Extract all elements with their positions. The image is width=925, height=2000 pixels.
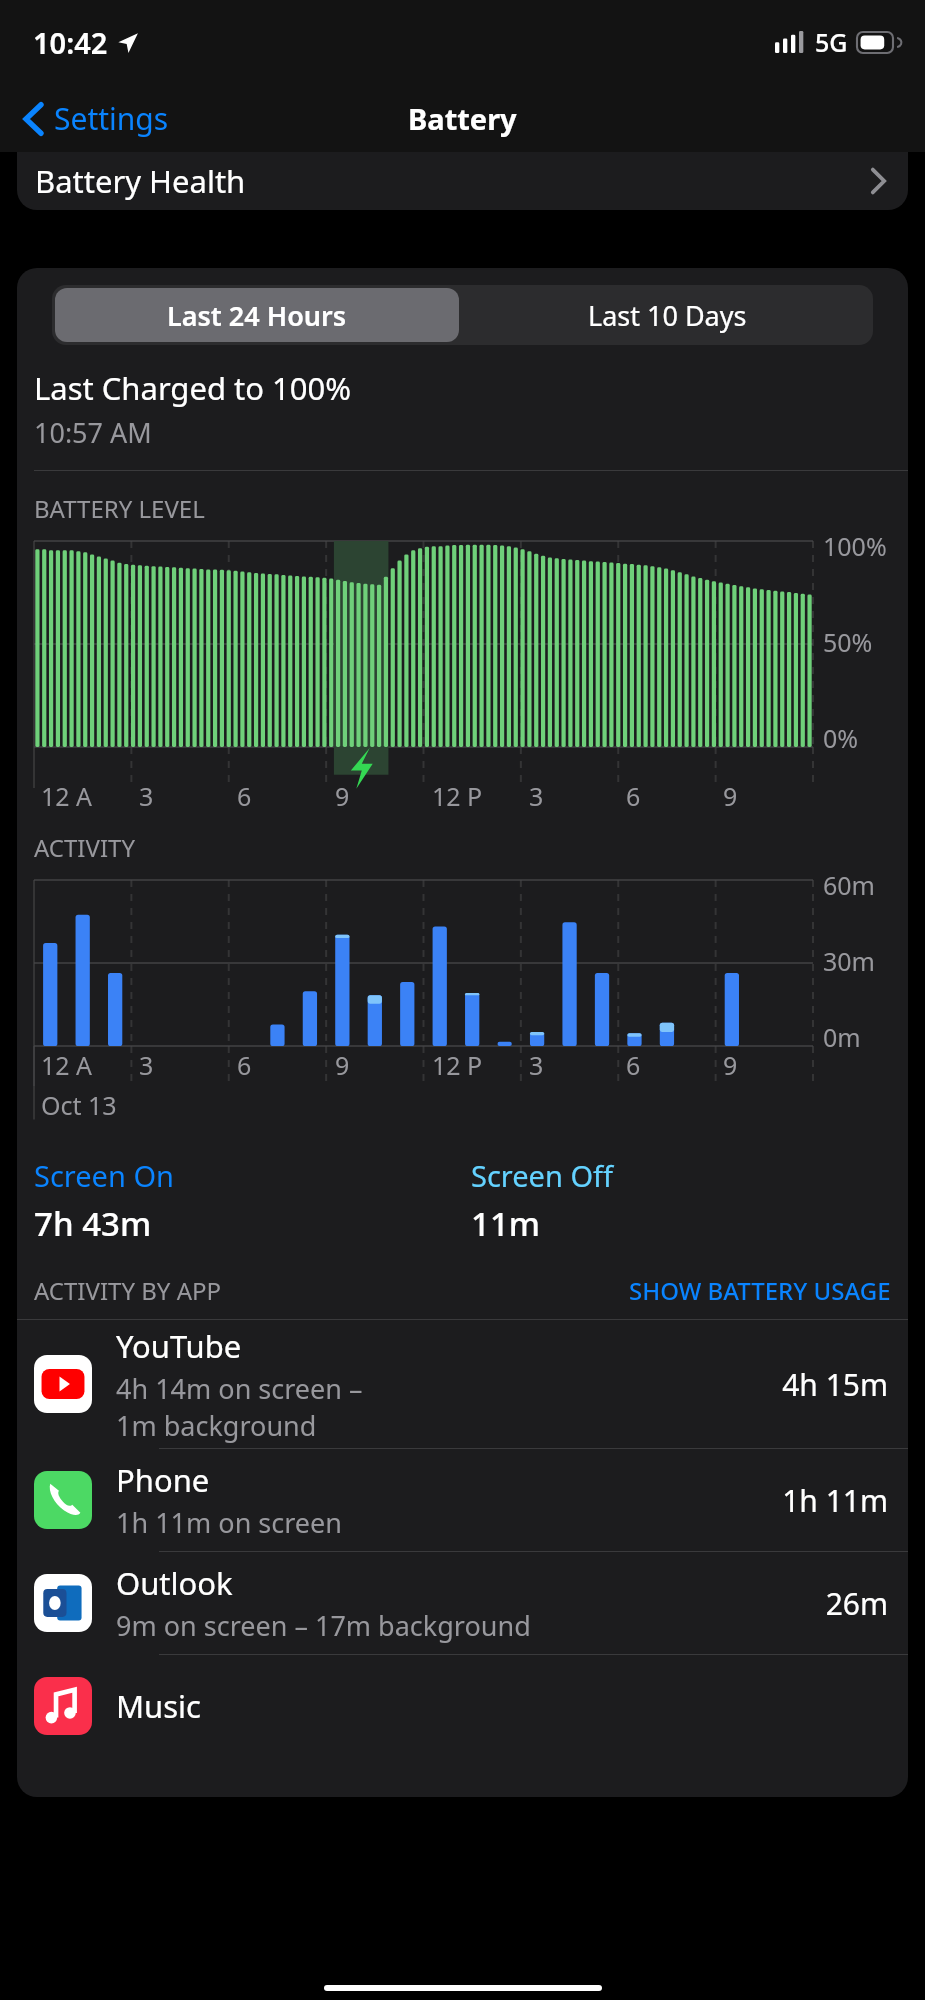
staticText: 4h 15m bbox=[782, 1364, 888, 1405]
staticText: 6 bbox=[626, 779, 641, 813]
staticText: 4h 14m on screen – bbox=[116, 1370, 363, 1407]
staticText: 0% bbox=[823, 721, 859, 755]
button[interactable]: Battery Health bbox=[17, 152, 908, 210]
staticText: 26m bbox=[825, 1583, 888, 1624]
staticText: Battery bbox=[408, 99, 517, 138]
staticText: 9 bbox=[335, 1048, 350, 1082]
staticText: 7h 43m bbox=[34, 1201, 152, 1246]
staticText: 12 A bbox=[41, 1048, 93, 1082]
staticText: 10:57 AM bbox=[34, 414, 152, 451]
staticText: 6 bbox=[237, 779, 252, 813]
staticText: SHOW BATTERY USAGE bbox=[629, 1274, 891, 1307]
staticText: Last 24 Hours bbox=[167, 297, 347, 334]
staticText: 6 bbox=[626, 1048, 641, 1082]
button[interactable]: Outlook bbox=[17, 1552, 908, 1654]
staticText: 3 bbox=[139, 1048, 154, 1082]
staticText: 3 bbox=[529, 779, 544, 813]
staticText: Settings bbox=[54, 98, 169, 139]
staticText: Outlook bbox=[116, 1562, 233, 1604]
staticText: ACTIVITY bbox=[34, 831, 135, 864]
staticText: 3 bbox=[529, 1048, 544, 1082]
staticText: 10:42 bbox=[33, 23, 108, 62]
staticText: 1h 11m on screen bbox=[116, 1504, 342, 1541]
staticText: 1m background bbox=[116, 1407, 317, 1444]
button[interactable]: SHOW BATTERY USAGE bbox=[629, 1274, 891, 1307]
staticText: 50% bbox=[823, 625, 873, 659]
staticText: 3 bbox=[139, 779, 154, 813]
staticText: 11m bbox=[471, 1201, 541, 1246]
staticText: 30m bbox=[823, 944, 875, 978]
staticText: 6 bbox=[237, 1048, 252, 1082]
staticText: 5G bbox=[815, 25, 848, 59]
staticText: 9 bbox=[723, 1048, 738, 1082]
staticText: 9m on screen – 17m background bbox=[116, 1607, 531, 1644]
staticText: Last 10 Days bbox=[588, 297, 747, 334]
staticText: 9 bbox=[335, 779, 350, 813]
button[interactable]: Settings bbox=[20, 92, 173, 145]
staticText: Music bbox=[116, 1685, 202, 1727]
staticText: 12 A bbox=[41, 779, 93, 813]
staticText: 1h 11m bbox=[782, 1480, 888, 1521]
button[interactable]: Last 10 Days bbox=[462, 285, 873, 345]
button[interactable]: Phone bbox=[17, 1449, 908, 1551]
button[interactable]: Last 24 Hours bbox=[55, 288, 459, 342]
button[interactable]: YouTube bbox=[17, 1320, 908, 1448]
staticText: Phone bbox=[116, 1459, 210, 1501]
staticText: 12 P bbox=[432, 779, 483, 813]
staticText: YouTube bbox=[116, 1325, 242, 1367]
staticText: Battery Health bbox=[35, 160, 246, 202]
staticText: ACTIVITY BY APP bbox=[34, 1274, 222, 1307]
staticText: Oct 13 bbox=[41, 1088, 117, 1122]
staticText: 9 bbox=[723, 779, 738, 813]
staticText: BATTERY LEVEL bbox=[34, 492, 205, 525]
button[interactable]: Music bbox=[17, 1655, 908, 1757]
staticText: Last Charged to 100% bbox=[34, 367, 352, 409]
staticText: Screen On bbox=[34, 1156, 174, 1195]
staticText: Screen Off bbox=[471, 1156, 614, 1195]
staticText: 100% bbox=[823, 529, 887, 563]
staticText: 12 P bbox=[432, 1048, 483, 1082]
staticText: 60m bbox=[823, 868, 875, 902]
staticText: 0m bbox=[823, 1020, 861, 1054]
